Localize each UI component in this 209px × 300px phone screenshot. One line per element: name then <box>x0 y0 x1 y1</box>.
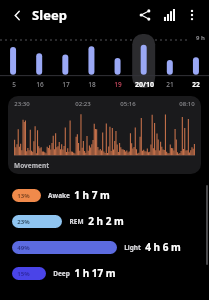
button[interactable]: 23% <box>12 208 197 234</box>
button[interactable]: Back <box>6 4 28 26</box>
staticText: 15% <box>17 270 30 278</box>
staticText: 2 h 2 m <box>88 214 124 228</box>
button[interactable]: 18 <box>79 80 105 89</box>
staticText: 4 h 6 m <box>145 240 181 254</box>
staticText: 1 h 7 m <box>74 188 110 202</box>
staticText: 05:16 <box>120 100 136 108</box>
staticText: Light <box>124 243 141 252</box>
staticText: 13% <box>17 192 30 200</box>
staticText: Deep <box>53 269 70 278</box>
button[interactable]: 20/10 <box>131 80 157 90</box>
button[interactable]: Share <box>133 3 157 27</box>
staticText: 16 <box>36 80 44 89</box>
button[interactable]: 15% <box>12 260 197 286</box>
staticText: REM <box>69 217 84 226</box>
button[interactable]: 13% <box>12 182 197 208</box>
staticText: 17 <box>62 80 70 89</box>
staticText: 49% <box>17 244 30 252</box>
button[interactable]: 49% <box>12 234 197 260</box>
staticText: 08:10 <box>179 100 195 108</box>
button[interactable]: 5 <box>0 80 27 89</box>
button[interactable]: 22 <box>183 80 209 89</box>
staticText: 23% <box>17 218 30 226</box>
button[interactable]: 19 <box>105 80 131 89</box>
staticText: Sleep <box>32 6 67 24</box>
button[interactable]: 16 <box>27 80 53 89</box>
staticText: Awake <box>48 191 70 200</box>
button[interactable]: 23:30 <box>8 96 201 174</box>
staticText: 18 <box>88 80 96 89</box>
staticText: 19 <box>114 80 122 89</box>
staticText: 23:30 <box>14 100 30 108</box>
button[interactable]: More options <box>181 4 203 26</box>
staticText: 21 <box>166 80 174 89</box>
staticText: 9 h <box>196 34 205 42</box>
staticText: 20/10 <box>135 80 154 90</box>
staticText: 5 <box>12 80 16 89</box>
staticText: 1 h 17 m <box>74 266 116 280</box>
button[interactable]: 17 <box>53 80 79 89</box>
button[interactable]: 21 <box>157 80 183 89</box>
staticText: 22 <box>192 80 200 89</box>
staticText: Movement <box>14 161 49 170</box>
staticText: 02:23 <box>75 100 91 108</box>
button[interactable]: Statistics <box>157 3 181 27</box>
